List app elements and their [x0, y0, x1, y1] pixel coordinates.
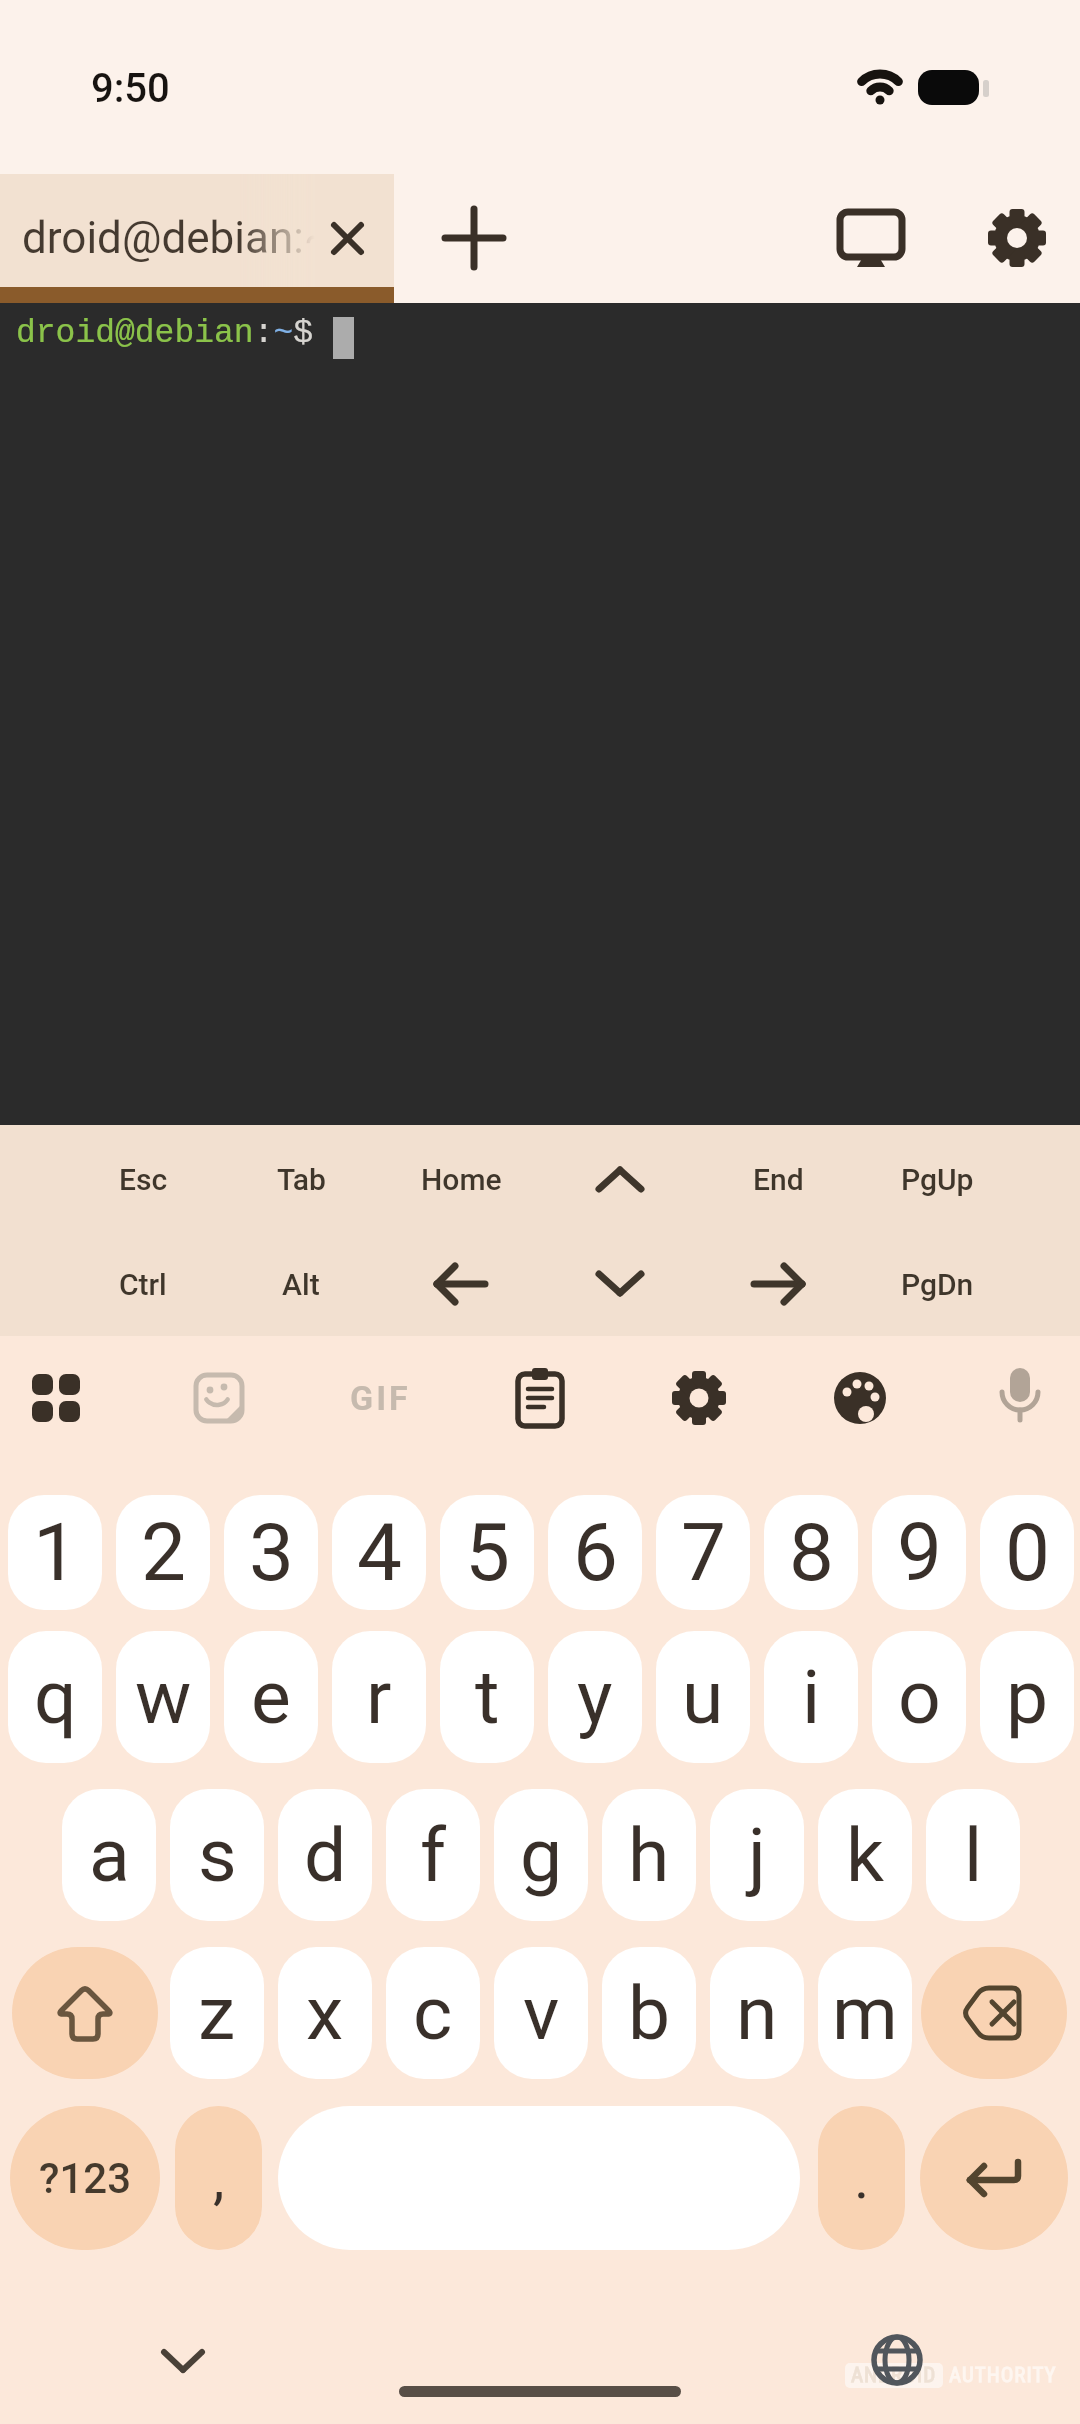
staticText: 0	[1005, 1506, 1050, 1600]
staticText: u	[682, 1653, 724, 1741]
button[interactable]: l	[926, 1789, 1020, 1921]
staticText: b	[628, 1969, 671, 2057]
staticText: .	[854, 2144, 870, 2212]
button[interactable]: h	[602, 1789, 696, 1921]
button[interactable]	[278, 2106, 800, 2250]
button[interactable]	[980, 1358, 1060, 1438]
button[interactable]: t	[440, 1631, 534, 1763]
staticText: r	[366, 1653, 392, 1741]
staticText: m	[832, 1969, 898, 2057]
button[interactable]	[16, 1358, 96, 1438]
button[interactable]: GIF	[340, 1358, 420, 1438]
button[interactable]: Tab	[231, 1131, 371, 1227]
button[interactable]	[821, 188, 921, 288]
button[interactable]: e	[224, 1631, 318, 1763]
button[interactable]	[659, 1358, 739, 1438]
button[interactable]	[391, 1236, 531, 1332]
button[interactable]: g	[494, 1789, 588, 1921]
staticText: End	[753, 1162, 804, 1197]
button[interactable]: q	[8, 1631, 102, 1763]
button[interactable]	[12, 1947, 158, 2079]
button[interactable]: y	[548, 1631, 642, 1763]
button[interactable]: Home	[391, 1131, 531, 1227]
staticText: droid@debian:~	[22, 212, 334, 264]
button[interactable]: d	[278, 1789, 372, 1921]
staticText: o	[898, 1653, 941, 1741]
staticText: 5	[465, 1506, 510, 1600]
staticText: 4	[357, 1506, 402, 1600]
button[interactable]	[920, 2106, 1068, 2250]
button[interactable]	[820, 1358, 900, 1438]
staticText: ,	[213, 2144, 225, 2212]
staticText: Tab	[277, 1162, 326, 1197]
staticText: e	[251, 1653, 291, 1741]
staticText: ?123	[39, 2154, 132, 2203]
staticText: v	[523, 1969, 560, 2057]
staticText: w	[135, 1653, 192, 1741]
button[interactable]	[921, 1947, 1067, 2079]
button[interactable]	[550, 1236, 690, 1332]
button[interactable]: 6	[548, 1495, 642, 1610]
button[interactable]: End	[708, 1131, 848, 1227]
button[interactable]: n	[710, 1947, 804, 2079]
staticText: x	[306, 1969, 344, 2057]
button[interactable]: m	[818, 1947, 912, 2079]
button[interactable]: z	[170, 1947, 264, 2079]
staticText: Alt	[282, 1267, 320, 1302]
button[interactable]: j	[710, 1789, 804, 1921]
staticText: p	[1006, 1653, 1049, 1741]
button[interactable]: a	[62, 1789, 156, 1921]
button[interactable]: w	[116, 1631, 210, 1763]
staticText: j	[748, 1811, 766, 1899]
button[interactable]: PgUp	[867, 1131, 1007, 1227]
button[interactable]: k	[818, 1789, 912, 1921]
button[interactable]: c	[386, 1947, 480, 2079]
button[interactable]: droid@debian:~	[0, 174, 394, 287]
button[interactable]: p	[980, 1631, 1074, 1763]
button[interactable]: 1	[8, 1495, 102, 1610]
button[interactable]: f	[386, 1789, 480, 1921]
button[interactable]: b	[602, 1947, 696, 2079]
button[interactable]: Alt	[231, 1236, 371, 1332]
button[interactable]: 3	[224, 1495, 318, 1610]
button[interactable]: PgDn	[867, 1236, 1007, 1332]
staticText: y	[577, 1653, 613, 1741]
staticText: i	[802, 1653, 821, 1741]
button[interactable]: .	[818, 2106, 905, 2250]
button[interactable]: ,	[175, 2106, 262, 2250]
button[interactable]: 8	[764, 1495, 858, 1610]
button[interactable]: 7	[656, 1495, 750, 1610]
button[interactable]: ?123	[10, 2106, 160, 2250]
staticText: 9:50	[91, 65, 170, 112]
button[interactable]	[424, 188, 524, 288]
button[interactable]: 9	[872, 1495, 966, 1610]
button[interactable]	[847, 2320, 947, 2400]
button[interactable]	[133, 2321, 233, 2401]
button[interactable]: Ctrl	[73, 1236, 213, 1332]
button[interactable]: 5	[440, 1495, 534, 1610]
staticText: k	[846, 1811, 885, 1899]
button[interactable]	[179, 1358, 259, 1438]
button[interactable]	[550, 1131, 690, 1227]
staticText: 7	[681, 1506, 726, 1600]
button[interactable]: Esc	[73, 1131, 213, 1227]
button[interactable]: u	[656, 1631, 750, 1763]
button[interactable]: o	[872, 1631, 966, 1763]
button[interactable]: i	[764, 1631, 858, 1763]
button[interactable]: s	[170, 1789, 264, 1921]
staticText: t	[475, 1653, 500, 1741]
staticText: Esc	[119, 1162, 168, 1197]
staticText: PgUp	[901, 1162, 974, 1197]
button[interactable]: r	[332, 1631, 426, 1763]
staticText: f	[420, 1811, 447, 1899]
button[interactable]: 0	[980, 1495, 1074, 1610]
button[interactable]	[967, 188, 1067, 288]
button[interactable]: 4	[332, 1495, 426, 1610]
button[interactable]: 2	[116, 1495, 210, 1610]
button[interactable]: x	[278, 1947, 372, 2079]
staticText: a	[89, 1811, 130, 1899]
button[interactable]: v	[494, 1947, 588, 2079]
button[interactable]	[500, 1358, 580, 1438]
staticText: droid@debian:~$	[16, 315, 314, 352]
button[interactable]	[708, 1236, 848, 1332]
